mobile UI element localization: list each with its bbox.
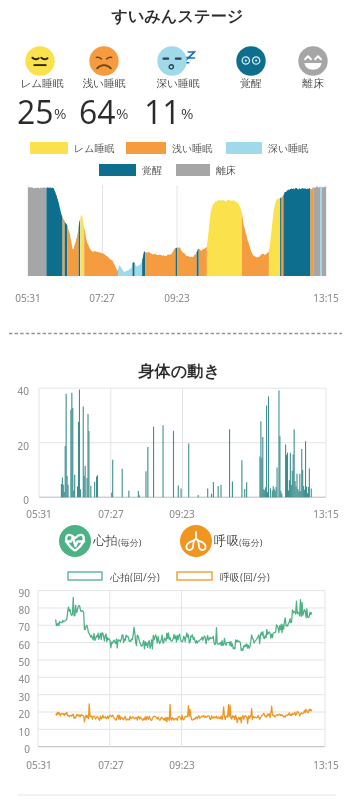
staticText: 09:23 — [157, 291, 197, 305]
button[interactable]: 離床 — [176, 164, 230, 176]
staticText: 離床 — [279, 77, 347, 91]
staticText: 20 — [0, 707, 30, 721]
staticText: 30 — [0, 690, 30, 704]
staticText: 07:27 — [82, 291, 122, 305]
staticText: 0 — [0, 742, 30, 756]
button[interactable]: 離床 — [279, 44, 347, 92]
staticText: すいみんステージ — [47, 6, 307, 26]
button[interactable]: 深い睡眠 — [226, 142, 303, 154]
staticText: 13:15 — [306, 291, 346, 305]
staticText: % — [181, 103, 194, 123]
staticText: (毎分) — [239, 536, 263, 548]
staticText: 60 — [0, 638, 30, 652]
button[interactable]: 覚醒 — [217, 44, 285, 92]
staticText: 心拍(回/分) — [110, 570, 160, 582]
button[interactable]: 呼吸(回/分) — [177, 570, 262, 582]
staticText: 50 — [0, 655, 30, 669]
button[interactable]: レム睡眠 — [30, 142, 109, 154]
staticText: レム睡眠 — [74, 142, 115, 154]
staticText: 離床 — [216, 164, 236, 176]
staticText: 浅い睡眠 — [172, 142, 213, 154]
staticText: 80 — [0, 603, 30, 617]
staticText: % — [116, 103, 129, 123]
button[interactable]: 深い睡眠 — [144, 44, 212, 92]
staticText: 05:31 — [19, 507, 59, 521]
staticText: 10 — [0, 725, 30, 739]
button[interactable]: 浅い睡眠 — [70, 44, 138, 92]
staticText: 70 — [0, 620, 30, 634]
staticText: 呼吸 — [214, 533, 239, 549]
staticText: 40 — [0, 672, 30, 686]
staticText: 09:23 — [162, 758, 202, 772]
staticText: レム睡眠 — [8, 77, 76, 91]
staticText: 13:15 — [306, 507, 346, 521]
button[interactable]: 心拍(回/分) — [68, 570, 152, 582]
staticText: 0 — [0, 493, 29, 507]
staticText: 覚醒 — [142, 164, 162, 176]
button[interactable]: 呼吸 — [180, 525, 261, 557]
staticText: 40 — [0, 384, 29, 398]
staticText: 07:27 — [91, 758, 131, 772]
staticText: 64 — [79, 90, 116, 124]
staticText: 07:27 — [91, 507, 131, 521]
staticText: 09:23 — [162, 507, 202, 521]
button[interactable]: 心拍 — [59, 525, 140, 557]
staticText: 25 — [17, 90, 54, 124]
staticText: 深い睡眠 — [144, 77, 212, 91]
staticText: 90 — [0, 586, 30, 600]
staticText: 11 — [144, 90, 181, 124]
staticText: 05:31 — [19, 758, 59, 772]
button[interactable]: 浅い睡眠 — [126, 142, 207, 154]
staticText: 身体の動き — [49, 361, 309, 381]
staticText: 呼吸(回/分) — [220, 570, 270, 582]
staticText: (毎分) — [118, 536, 142, 548]
staticText: % — [54, 103, 67, 123]
staticText: 浅い睡眠 — [70, 77, 138, 91]
staticText: 05:31 — [8, 291, 48, 305]
staticText: 覚醒 — [217, 77, 285, 91]
button[interactable]: 覚醒 — [99, 164, 156, 176]
staticText: 心拍 — [93, 533, 118, 549]
staticText: 20 — [0, 439, 29, 453]
staticText: 深い睡眠 — [268, 142, 309, 154]
staticText: 13:15 — [306, 758, 346, 772]
button[interactable]: レム睡眠 — [8, 44, 76, 92]
